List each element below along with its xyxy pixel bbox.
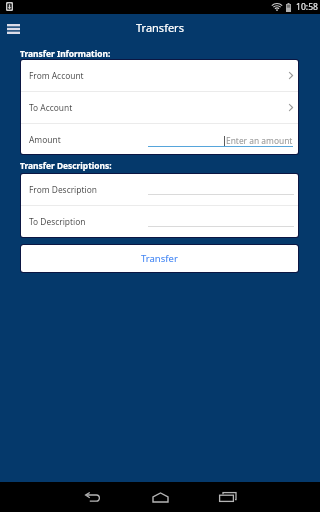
button[interactable]: Transfer bbox=[21, 245, 298, 272]
button[interactable]: Home bbox=[126, 482, 194, 512]
button[interactable]: To Account bbox=[21, 92, 298, 123]
button[interactable]: Back bbox=[58, 482, 126, 512]
button[interactable]: From Account bbox=[21, 60, 298, 91]
button[interactable] bbox=[148, 213, 294, 227]
staticText: Transfer Information: bbox=[20, 48, 111, 59]
staticText: Enter an amount bbox=[226, 135, 293, 146]
button[interactable]: Recent apps bbox=[194, 482, 262, 512]
staticText: Amount bbox=[29, 134, 61, 145]
staticText: 10:58 bbox=[296, 1, 318, 13]
staticText: To Account bbox=[29, 102, 73, 113]
staticText: Transfer Descriptions: bbox=[20, 160, 112, 171]
staticText: Transfer bbox=[141, 252, 178, 265]
staticText: To Description bbox=[29, 216, 86, 227]
staticText: From Account bbox=[29, 70, 84, 81]
staticText: From Description bbox=[29, 184, 97, 195]
staticText: Transfers bbox=[136, 20, 184, 35]
button[interactable]: Enter an amount bbox=[148, 133, 293, 147]
button[interactable]: Open navigation menu bbox=[0, 14, 26, 43]
button[interactable] bbox=[148, 181, 294, 195]
